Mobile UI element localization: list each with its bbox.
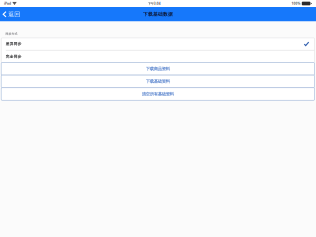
staticText: 100% — [292, 1, 301, 6]
staticText: iPad — [4, 1, 11, 6]
button[interactable]: 下载商品资料 — [1, 62, 314, 75]
staticText: 差异同步 — [6, 42, 22, 46]
staticText: 下载基础资料 — [146, 79, 170, 84]
button[interactable]: 完全同步 — [1, 50, 314, 62]
staticText: 清空所有基础资料 — [142, 91, 174, 97]
button[interactable]: 清空所有基础资料 — [1, 88, 314, 100]
button[interactable]: 下载基础资料 — [1, 75, 314, 88]
staticText: 完全同步 — [6, 54, 22, 59]
button[interactable]: 差异同步 — [1, 38, 314, 50]
staticText: 同步方式 — [5, 32, 17, 35]
staticText: 下午3:04 — [148, 1, 161, 6]
button[interactable]: 返回 — [0, 7, 23, 21]
staticText: 返回 — [8, 10, 20, 18]
staticText: 下载商品资料 — [146, 66, 170, 71]
staticText: 下载基础数据 — [143, 11, 173, 17]
